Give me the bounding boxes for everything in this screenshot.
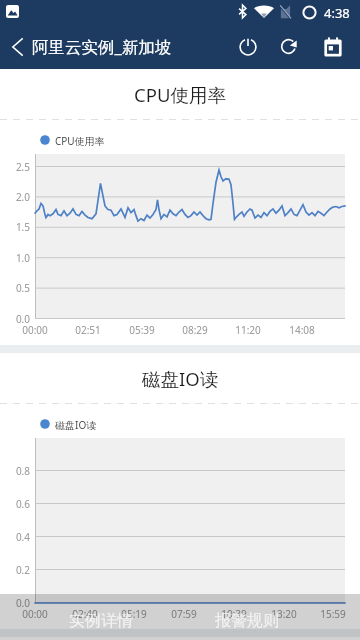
staticText: 1.0 bbox=[0, 251, 30, 265]
button[interactable]: 实例详情 bbox=[64, 594, 138, 640]
staticText: 磁盘IO读 bbox=[142, 366, 219, 391]
staticText: 00:00 bbox=[15, 323, 55, 337]
button[interactable]: Calendar bbox=[313, 24, 353, 69]
staticText: 实例详情 bbox=[69, 611, 133, 631]
staticText: 0.0 bbox=[0, 312, 30, 326]
staticText: 00:00 bbox=[15, 607, 55, 621]
staticText: 0.5 bbox=[0, 281, 30, 295]
staticText: 0.0 bbox=[0, 596, 30, 610]
staticText: 15:59 bbox=[313, 607, 353, 621]
staticText: 13:20 bbox=[264, 607, 304, 621]
staticText: CPU使用率 bbox=[134, 82, 226, 107]
button[interactable]: Back bbox=[0, 24, 34, 69]
staticText: 07:59 bbox=[164, 607, 204, 621]
staticText: 4:38 bbox=[324, 4, 350, 22]
staticText: 02:40 bbox=[65, 607, 105, 621]
button[interactable]: 报警规则 bbox=[210, 594, 284, 640]
button[interactable]: Refresh bbox=[268, 24, 308, 69]
staticText: CPU使用率 bbox=[55, 134, 105, 146]
staticText: 14:08 bbox=[282, 323, 322, 337]
staticText: 05:19 bbox=[114, 607, 154, 621]
staticText: 阿里云实例_新加坡 bbox=[32, 35, 172, 58]
staticText: 0.2 bbox=[0, 563, 30, 577]
staticText: 报警规则 bbox=[215, 611, 279, 631]
staticText: 2.0 bbox=[0, 190, 30, 204]
staticText: 2.5 bbox=[0, 160, 30, 174]
staticText: 0.4 bbox=[0, 530, 30, 544]
button[interactable]: Power bbox=[228, 24, 268, 69]
staticText: 05:39 bbox=[122, 323, 162, 337]
staticText: 11:20 bbox=[228, 323, 268, 337]
staticText: 08:29 bbox=[175, 323, 215, 337]
staticText: 1.5 bbox=[0, 220, 30, 234]
staticText: 10:39 bbox=[214, 607, 254, 621]
staticText: 0.6 bbox=[0, 497, 30, 511]
staticText: 02:51 bbox=[68, 323, 108, 337]
staticText: 0.8 bbox=[0, 464, 30, 478]
staticText: 磁盘IO读 bbox=[55, 418, 97, 430]
